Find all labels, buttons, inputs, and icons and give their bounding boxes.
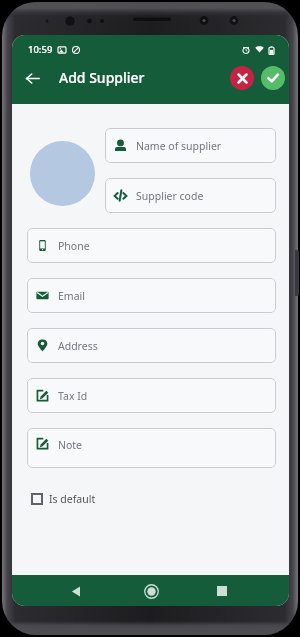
button[interactable]: Address — [27, 328, 276, 363]
button[interactable]: Cancel — [230, 66, 254, 90]
staticText: Address — [58, 339, 98, 353]
staticText: Tax Id — [58, 389, 88, 403]
button[interactable]: Back — [62, 577, 90, 605]
staticText: Add Supplier — [59, 68, 145, 87]
button[interactable]: Supplier code — [105, 178, 276, 213]
button[interactable]: Tax Id — [27, 378, 276, 413]
staticText: Phone — [58, 239, 90, 253]
button[interactable]: Name of supplier — [105, 128, 276, 163]
button[interactable]: Back — [20, 66, 44, 90]
button[interactable]: Phone — [27, 228, 276, 263]
staticText: Note — [58, 438, 83, 452]
button[interactable]: Save — [261, 66, 285, 90]
staticText: Is default — [49, 492, 96, 506]
button[interactable]: Recents — [208, 577, 236, 605]
staticText: Name of supplier — [136, 139, 222, 153]
staticText: Email — [58, 289, 85, 303]
staticText: Supplier code — [136, 189, 204, 203]
button[interactable]: Note — [27, 428, 276, 468]
button[interactable]: Email — [27, 278, 276, 313]
button[interactable]: Supplier photo — [30, 141, 95, 206]
staticText: 10:59 — [28, 43, 53, 56]
button[interactable]: Is default — [29, 492, 96, 506]
button[interactable]: Home — [137, 577, 165, 605]
